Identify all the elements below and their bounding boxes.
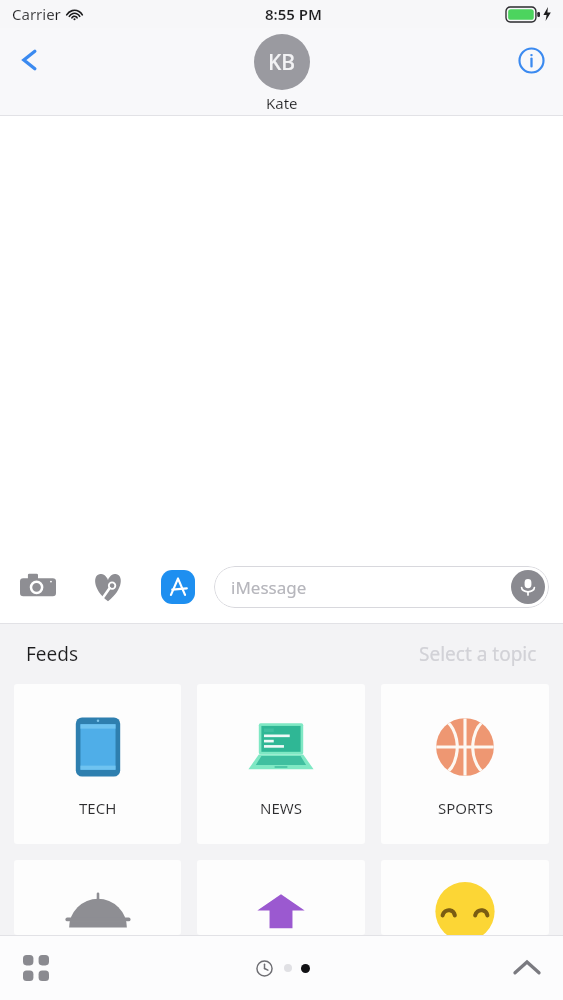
button[interactable]: FUN: [381, 860, 549, 935]
staticText: NEWS: [260, 798, 302, 818]
button[interactable]: Expand: [503, 944, 551, 992]
button[interactable]: SPORTS: [381, 684, 549, 844]
button[interactable]: KB: [254, 34, 310, 113]
button[interactable]: Recents: [253, 957, 275, 979]
button[interactable]: TRENDING: [197, 860, 365, 935]
button[interactable]: NEWS: [197, 684, 365, 844]
staticText: KB: [268, 48, 296, 77]
button[interactable]: All apps: [12, 944, 60, 992]
button[interactable]: iMessage: [214, 566, 549, 608]
button[interactable]: TECH: [14, 684, 181, 844]
staticText: Carrier: [12, 4, 61, 24]
button[interactable]: Back: [8, 38, 52, 82]
button[interactable]: Camera: [14, 563, 62, 611]
staticText: SPORTS: [438, 798, 493, 818]
button[interactable]: Dictate: [511, 570, 545, 604]
staticText: TECH: [79, 798, 117, 818]
button[interactable]: FOOD: [14, 860, 181, 935]
staticText: Kate: [266, 93, 298, 113]
button[interactable]: App Store: [154, 563, 202, 611]
staticText: 8:55 PM: [265, 4, 322, 24]
staticText: iMessage: [231, 576, 307, 599]
button[interactable]: Details: [511, 40, 551, 80]
button[interactable]: Digital Touch: [84, 563, 132, 611]
staticText: Feeds: [26, 641, 79, 667]
staticText: Select a topic: [419, 641, 537, 667]
